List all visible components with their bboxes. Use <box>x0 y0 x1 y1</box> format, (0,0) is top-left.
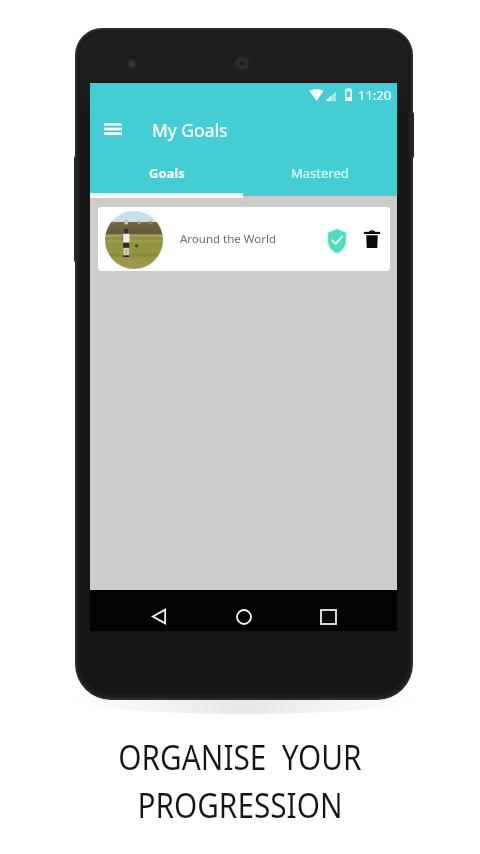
staticText: Mastered <box>291 164 349 182</box>
staticText: Goals <box>149 164 185 182</box>
button[interactable]: Recent apps <box>313 601 344 632</box>
staticText: My Goals <box>152 118 228 142</box>
button[interactable]: Mastered <box>243 159 397 193</box>
button[interactable]: Around the World <box>98 207 390 271</box>
button[interactable]: Back <box>143 601 174 632</box>
staticText: 11:20 <box>358 86 392 103</box>
button[interactable]: Home <box>228 601 259 632</box>
staticText: Around the World <box>180 231 277 247</box>
button[interactable]: Goals <box>90 159 243 193</box>
button[interactable]: Mark as mastered <box>321 225 352 256</box>
button[interactable]: Open navigation drawer <box>98 116 128 142</box>
staticText: PROGRESSION <box>17 782 463 828</box>
staticText: ORGANISE YOUR <box>17 734 463 780</box>
button[interactable]: Delete goal <box>356 223 387 254</box>
